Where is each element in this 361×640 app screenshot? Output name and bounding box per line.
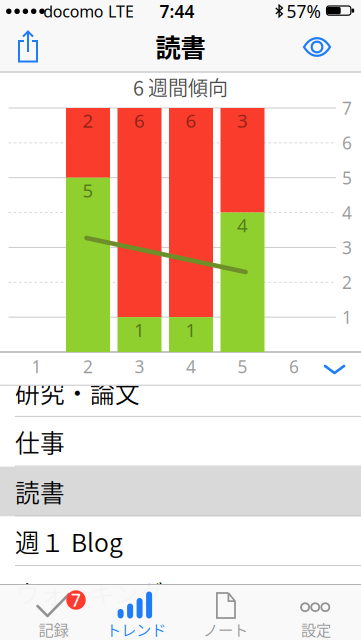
staticText: 週１ Blog bbox=[15, 523, 123, 559]
button[interactable]: ウォーキング bbox=[0, 566, 361, 616]
staticText: ウォーキング bbox=[15, 575, 164, 611]
staticText: 4 bbox=[342, 201, 352, 224]
button[interactable]: 読書 bbox=[0, 467, 361, 516]
button[interactable]: Share bbox=[15, 29, 41, 64]
button[interactable]: 研究・論文 bbox=[0, 367, 361, 417]
staticText: 2 bbox=[342, 271, 352, 294]
staticText: docomo bbox=[43, 1, 104, 22]
staticText: 57% bbox=[286, 0, 320, 23]
staticText: 5 bbox=[237, 355, 247, 378]
staticText: 3 bbox=[134, 355, 144, 378]
staticText: 1 bbox=[31, 355, 41, 378]
button[interactable]: Expand chart bbox=[323, 364, 346, 376]
staticText: 7 bbox=[71, 588, 81, 611]
staticText: 6 bbox=[134, 108, 145, 133]
staticText: トレンド bbox=[106, 618, 166, 640]
staticText: 記録 bbox=[38, 618, 68, 640]
staticText: 5 bbox=[82, 178, 93, 203]
staticText: 3 bbox=[237, 108, 248, 133]
staticText: 7:44 bbox=[159, 0, 194, 23]
button[interactable]: 記録 bbox=[10, 584, 100, 640]
staticText: 3 bbox=[342, 236, 352, 259]
staticText: 2 bbox=[82, 108, 93, 133]
staticText: 設定 bbox=[301, 618, 331, 640]
staticText: 7 bbox=[342, 96, 352, 119]
staticText: LTE bbox=[108, 1, 134, 22]
staticText: 6 週間傾向 bbox=[133, 72, 228, 101]
button[interactable]: 週１ Blog bbox=[0, 516, 361, 566]
staticText: 読書 bbox=[155, 28, 205, 64]
staticText: 6 bbox=[289, 355, 299, 378]
staticText: 1 bbox=[134, 317, 145, 342]
staticText: 2 bbox=[83, 355, 93, 378]
staticText: 1 bbox=[342, 306, 352, 329]
staticText: 仕事 bbox=[15, 424, 65, 460]
staticText: ノート bbox=[203, 618, 248, 640]
button[interactable]: 設定 bbox=[271, 584, 361, 640]
button[interactable]: トレンド bbox=[90, 584, 180, 640]
staticText: 4 bbox=[237, 213, 248, 237]
button[interactable]: View options bbox=[302, 35, 332, 59]
staticText: 読書 bbox=[15, 474, 65, 509]
staticText: 6 bbox=[342, 131, 352, 154]
staticText: 5 bbox=[342, 166, 352, 189]
staticText: 研究・論文 bbox=[15, 374, 140, 410]
button[interactable]: ノート bbox=[181, 584, 271, 640]
staticText: 4 bbox=[186, 355, 196, 378]
staticText: 1 bbox=[185, 317, 196, 342]
button[interactable]: 仕事 bbox=[0, 417, 361, 467]
staticText: 6 bbox=[185, 108, 196, 133]
